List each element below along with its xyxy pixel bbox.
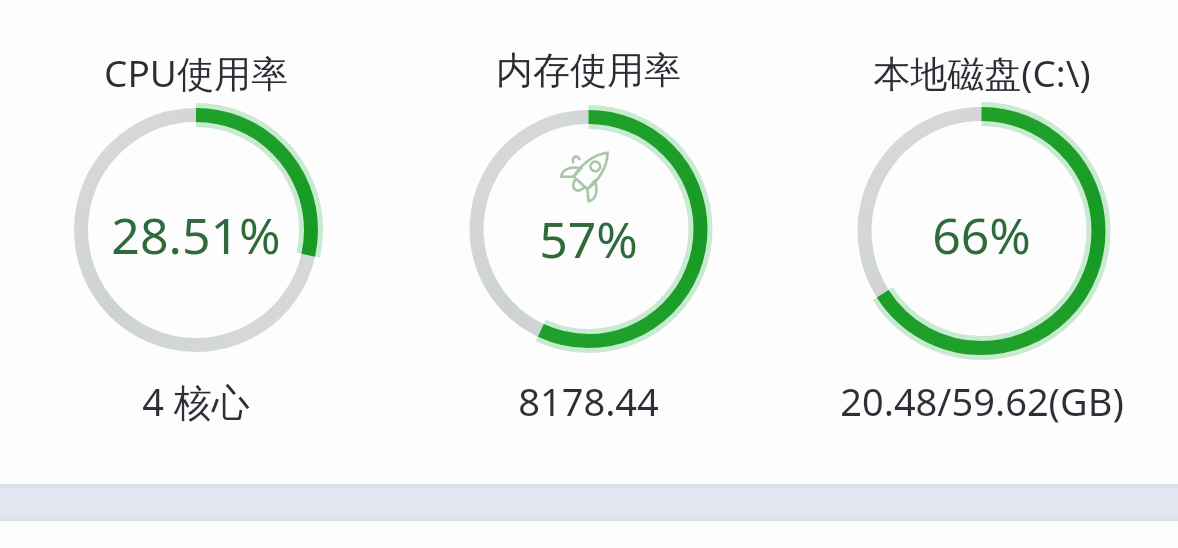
staticText: 4 核心 — [142, 375, 250, 427]
button[interactable]: 内存使用率 — [392, 0, 785, 470]
staticText: 57% — [539, 205, 638, 273]
staticText: 本地磁盘(C:\) — [873, 47, 1091, 98]
staticText: 66% — [932, 201, 1031, 269]
button[interactable]: CPU使用率 — [0, 0, 392, 470]
staticText: 20.48/59.62(GB) — [840, 375, 1124, 427]
staticText: 28.51% — [111, 201, 281, 269]
staticText: 8178.44 — [518, 375, 659, 427]
staticText: 内存使用率 — [496, 47, 681, 94]
staticText: CPU使用率 — [104, 47, 288, 98]
button[interactable]: 本地磁盘(C:\) — [785, 0, 1178, 470]
